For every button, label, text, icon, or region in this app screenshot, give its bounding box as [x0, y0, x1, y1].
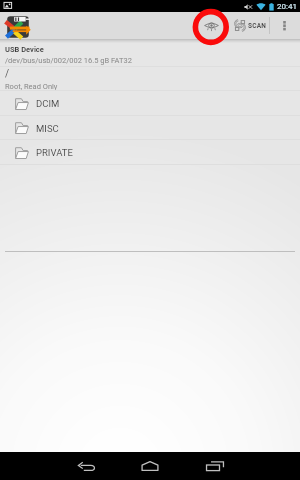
staticText: USB Device	[5, 45, 44, 54]
staticText: DCIM	[36, 98, 60, 109]
staticText: 20:41	[277, 2, 297, 11]
button[interactable]: Show hidden files	[194, 12, 228, 39]
button[interactable]: SCAN	[231, 12, 268, 39]
staticText: SCAN	[248, 22, 267, 30]
staticText: Root, Read Only	[5, 82, 58, 91]
staticText: /dev/bus/usb/002/002 16.5 gB FAT32	[5, 56, 132, 65]
button[interactable]: PRIVATE	[0, 140, 300, 165]
staticText: PRIVATE	[36, 147, 73, 158]
button[interactable]: MISC	[0, 116, 300, 140]
button[interactable]: App icon	[6, 15, 30, 39]
staticText: MISC	[36, 123, 59, 134]
button[interactable]: DCIM	[0, 91, 300, 116]
staticText: /	[5, 68, 10, 80]
button[interactable]: Home	[120, 452, 180, 480]
button[interactable]: Back	[56, 452, 116, 480]
button[interactable]: More options	[276, 12, 293, 39]
button[interactable]: Recent apps	[185, 452, 245, 480]
